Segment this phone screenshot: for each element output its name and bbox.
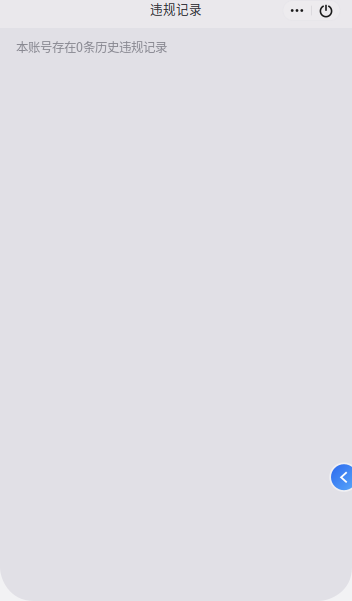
button[interactable]: Close mini program xyxy=(312,1,340,19)
staticText: 违规记录 xyxy=(150,0,202,18)
staticText: 本账号存在0条历史违规记录 xyxy=(16,37,167,55)
button[interactable]: More xyxy=(283,1,311,19)
button[interactable]: Back xyxy=(329,462,352,492)
